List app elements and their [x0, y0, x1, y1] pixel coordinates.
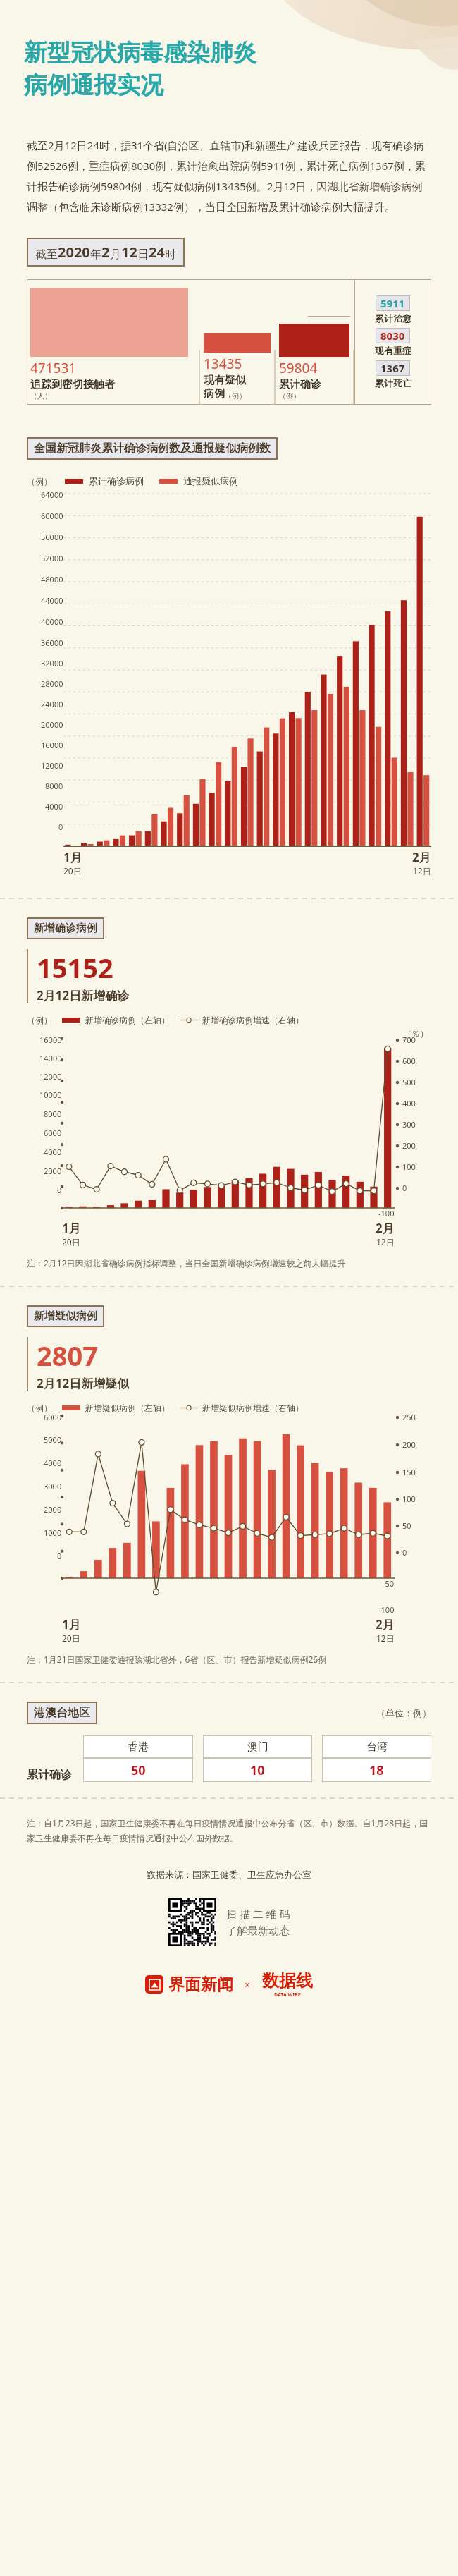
staticText: 15152	[37, 949, 113, 986]
staticText: 香港	[128, 1740, 149, 1754]
staticText: 注：1月21日国家卫健委通报除湖北省外，6省（区、市）报告新增疑似病例26例	[27, 1654, 327, 1665]
staticText: 港澳台地区	[34, 1706, 90, 1720]
staticText: （例）	[225, 391, 246, 401]
staticText: 40000	[41, 616, 63, 627]
staticText: 新增疑似病例	[34, 1310, 97, 1323]
staticText: 12日	[413, 865, 431, 877]
staticText: （人）	[30, 391, 51, 401]
staticText: 471531	[30, 359, 77, 377]
staticText: 8000	[45, 781, 63, 791]
staticText: 5911	[380, 296, 405, 310]
staticText: 现有疑似	[204, 374, 246, 387]
staticText: 新型冠状病毒感染肺炎	[24, 38, 256, 68]
staticText: 2月	[376, 1616, 395, 1632]
button[interactable]: 截至	[27, 238, 185, 267]
button[interactable]: 新增疑似病例	[27, 1305, 104, 1327]
staticText: 累计确诊	[27, 1768, 72, 1782]
staticText: 2	[101, 243, 110, 262]
staticText: 300	[402, 1119, 416, 1130]
staticText: 3000	[44, 1481, 62, 1491]
staticText: 500	[402, 1077, 416, 1087]
staticText: 注：自1月23日起，国家卫生健康委不再在每日疫情情况通报中公布分省（区、市）数据…	[27, 1817, 431, 1843]
staticText: 700	[402, 1034, 416, 1045]
staticText: 20日	[62, 1236, 80, 1247]
staticText: 60000	[41, 511, 63, 521]
button[interactable]: 澳门	[203, 1735, 312, 1782]
staticText: 台湾	[366, 1740, 388, 1754]
staticText: 4000	[44, 1458, 62, 1468]
staticText: 5000	[44, 1434, 62, 1445]
staticText: 数据线	[262, 1970, 313, 1991]
staticText: 澳门	[247, 1740, 268, 1754]
staticText: 16000	[41, 740, 63, 750]
staticText: 12日	[376, 1236, 395, 1247]
button[interactable]: 新增确诊病例	[27, 917, 104, 939]
staticText: 10000	[39, 1089, 62, 1100]
staticText: 6000	[44, 1128, 62, 1138]
staticText: 18	[369, 1762, 384, 1779]
staticText: 24000	[41, 699, 63, 709]
staticText: 20日	[63, 865, 82, 877]
staticText: 追踪到密切接触者	[30, 378, 115, 391]
staticText: 1000	[44, 1527, 62, 1538]
staticText: 1月	[62, 1220, 81, 1236]
staticText: 2月	[376, 1220, 395, 1236]
staticText: 12	[121, 243, 137, 262]
staticText: 2月12日新增疑似	[37, 1375, 130, 1391]
staticText: 250	[402, 1412, 416, 1422]
staticText: （例）	[27, 1403, 52, 1413]
staticText: 0	[58, 822, 63, 832]
staticText: 2807	[37, 1337, 98, 1374]
staticText: （例）	[279, 391, 300, 401]
staticText: 日	[137, 248, 149, 262]
staticText: 28000	[41, 678, 63, 689]
staticText: 累计治愈	[375, 312, 411, 324]
staticText: 新增确诊病例	[34, 922, 97, 935]
staticText: 56000	[41, 532, 63, 542]
staticText: 2月	[412, 849, 431, 865]
staticText: ×	[245, 1978, 251, 1991]
button[interactable]: 香港	[83, 1735, 193, 1782]
staticText: 50	[131, 1762, 146, 1779]
staticText: DATA WIRE	[274, 1991, 301, 1998]
staticText: 2000	[44, 1504, 62, 1515]
staticText: 2020	[58, 243, 90, 262]
staticText: 50	[402, 1520, 411, 1531]
staticText: 累计确诊	[279, 378, 321, 391]
staticText: 52000	[41, 553, 63, 563]
staticText: 累计确诊病例	[89, 475, 144, 487]
button[interactable]: 港澳台地区	[27, 1702, 97, 1724]
staticText: 12000	[39, 1071, 62, 1082]
staticText: 20000	[41, 719, 63, 730]
staticText: 累计死亡	[375, 377, 411, 389]
staticText: 4000	[44, 1147, 62, 1157]
staticText: 24	[149, 243, 165, 262]
staticText: 0	[57, 1551, 62, 1561]
staticText: 8030	[380, 329, 405, 343]
button[interactable]: 台湾	[322, 1735, 431, 1782]
staticText: 病例	[204, 387, 225, 401]
staticText: 10	[250, 1762, 265, 1779]
staticText: 现有重症	[375, 345, 411, 356]
staticText: 32000	[41, 658, 63, 669]
staticText: 14000	[39, 1053, 62, 1063]
staticText: （单位：例）	[376, 1707, 431, 1719]
staticText: 600	[402, 1056, 416, 1066]
staticText: 0	[402, 1183, 407, 1193]
staticText: 新增疑似病例增速（右轴）	[202, 1403, 304, 1413]
staticText: 界面新闻	[168, 1974, 233, 1995]
staticText: 病例通报实况	[24, 71, 163, 100]
staticText: 全国新冠肺炎累计确诊病例数及通报疑似病例数	[34, 441, 271, 456]
staticText: 59804	[279, 359, 318, 377]
staticText: 1月	[63, 849, 82, 865]
staticText: （例）	[27, 1015, 52, 1025]
staticText: -100	[378, 1208, 395, 1219]
staticText: 时	[165, 248, 176, 262]
staticText: 400	[402, 1098, 416, 1109]
staticText: -50	[383, 1578, 395, 1589]
button[interactable]: 全国新冠肺炎累计确诊病例数及通报疑似病例数	[27, 437, 278, 460]
staticText: 0	[402, 1547, 407, 1558]
staticText: 扫 描 二 维 码	[226, 1907, 290, 1921]
staticText: 12000	[41, 760, 63, 771]
staticText: 月	[110, 248, 121, 262]
